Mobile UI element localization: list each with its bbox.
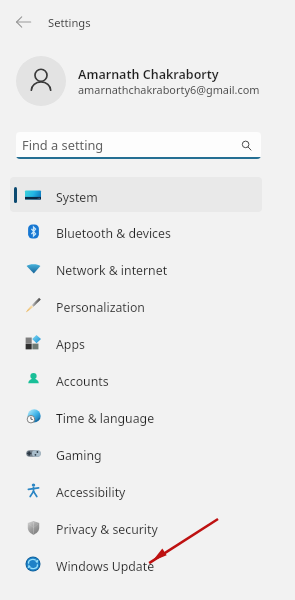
staticText: Network & internet [56, 262, 168, 279]
staticText: Apps [56, 336, 85, 353]
button[interactable]: Accounts [10, 361, 262, 396]
staticText: System [56, 189, 98, 206]
button[interactable]: System [10, 177, 262, 212]
staticText: Find a setting [22, 136, 104, 153]
button[interactable]: Time & language [10, 398, 262, 433]
staticText: Privacy & security [56, 521, 158, 538]
staticText: Gaming [56, 447, 102, 464]
button[interactable]: Personalization [10, 287, 262, 322]
button[interactable]: Gaming [10, 435, 262, 470]
staticText: Accessibility [56, 484, 126, 501]
staticText: Amarnath Chakraborty [78, 66, 219, 83]
staticText: Windows Update [56, 558, 155, 575]
staticText: Personalization [56, 299, 145, 316]
button[interactable]: Privacy & security [10, 509, 262, 544]
staticText: amarnathchakraborty6@gmail.com [78, 82, 260, 97]
button[interactable]: Find a setting [16, 132, 261, 159]
staticText: Accounts [56, 373, 109, 390]
button[interactable]: Network & internet [10, 250, 262, 285]
staticText: Time & language [56, 410, 155, 427]
button[interactable]: Windows Update [10, 546, 262, 581]
button[interactable]: Bluetooth & devices [10, 213, 262, 248]
staticText: Settings [48, 15, 91, 30]
button[interactable]: Apps [10, 324, 262, 359]
button[interactable]: Back [9, 8, 37, 36]
button[interactable]: Accessibility [10, 472, 262, 507]
button[interactable]: Amarnath Chakraborty [16, 56, 260, 106]
staticText: Bluetooth & devices [56, 225, 171, 242]
